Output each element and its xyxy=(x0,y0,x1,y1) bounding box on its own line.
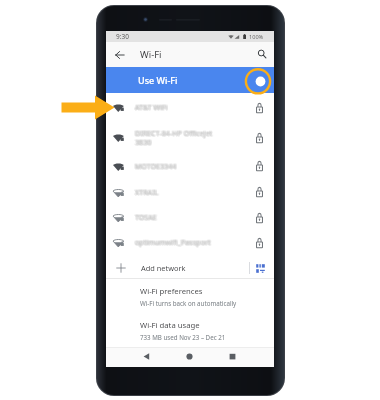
staticText: 3830 xyxy=(135,139,152,148)
staticText: 3830 xyxy=(134,137,151,146)
button[interactable]: Use Wi-Fi toggle xyxy=(244,67,272,93)
staticText: AT&T WiFi xyxy=(134,102,167,111)
staticText: AT&T WiFi xyxy=(136,102,169,111)
staticText: TOSAE xyxy=(136,213,158,222)
staticText: Wi-Fi data usage xyxy=(140,320,200,330)
staticText: Wi-Fi preferences xyxy=(140,286,203,296)
staticText: AT&T WiFi xyxy=(134,103,167,112)
staticText: MOTOE3344 xyxy=(136,163,178,172)
staticText: XTRAIL xyxy=(134,188,158,197)
staticText: 3830 xyxy=(136,137,153,146)
staticText: optimumwifi_Passport xyxy=(136,238,212,247)
staticText: MOTOE3344 xyxy=(134,162,176,171)
staticText: optimumwifi_Passport xyxy=(135,239,211,248)
button[interactable]: Home xyxy=(180,347,198,365)
staticText: TOSAE xyxy=(135,212,157,221)
staticText: AT&T WiFi xyxy=(136,104,169,113)
staticText: TOSAE xyxy=(136,214,158,223)
staticText: DIRECT-84-HP OfficeJet xyxy=(135,129,213,138)
staticText: XTRAIL xyxy=(136,187,160,196)
button[interactable]: TOSAE xyxy=(106,205,274,230)
button[interactable]: Wi-Fi data usage xyxy=(106,313,274,347)
button[interactable]: MOTOE3344 xyxy=(106,153,274,179)
staticText: 3830 xyxy=(136,138,153,147)
staticText: AT&T WiFi xyxy=(136,103,169,112)
staticText: 3830 xyxy=(135,138,152,147)
button[interactable]: Recent apps xyxy=(223,347,241,365)
staticText: DIRECT-84-HP OfficeJet xyxy=(135,130,213,139)
button[interactable]: Search xyxy=(250,42,275,67)
staticText: TOSAE xyxy=(134,212,156,221)
staticText: XTRAIL xyxy=(135,189,159,198)
staticText: Use Wi-Fi xyxy=(138,74,178,86)
staticText: TOSAE xyxy=(135,214,157,223)
staticText: TOSAE xyxy=(134,213,156,222)
staticText: DIRECT-84-HP OfficeJet xyxy=(135,129,213,138)
staticText: optimumwifi_Passport xyxy=(135,239,211,248)
staticText: optimumwifi_Passport xyxy=(135,238,211,247)
staticText: AT&T WiFi xyxy=(134,103,167,112)
staticText: 3830 xyxy=(134,138,151,147)
staticText: TOSAE xyxy=(135,213,157,222)
button[interactable]: Scan QR code xyxy=(256,264,265,273)
staticText: XTRAIL xyxy=(135,189,159,198)
staticText: 3830 xyxy=(135,137,152,146)
staticText: TOSAE xyxy=(136,213,158,222)
staticText: Add network xyxy=(141,263,186,273)
staticText: 3830 xyxy=(135,139,152,148)
staticText: XTRAIL xyxy=(135,188,159,197)
staticText: AT&T WiFi xyxy=(135,103,168,112)
staticText: DIRECT-84-HP OfficeJet xyxy=(134,129,212,138)
staticText: 733 MB used Nov 23 – Dec 21 xyxy=(140,333,226,341)
staticText: AT&T WiFi xyxy=(135,102,168,111)
staticText: XTRAIL xyxy=(136,189,160,198)
staticText: TOSAE xyxy=(135,213,157,222)
staticText: MOTOE3344 xyxy=(135,161,177,170)
button[interactable]: optimumwifi_Passport xyxy=(106,230,274,255)
staticText: 9:30 xyxy=(116,32,129,41)
button[interactable]: Back xyxy=(107,42,132,67)
staticText: Wi-Fi xyxy=(140,48,162,61)
staticText: optimumwifi_Passport xyxy=(136,239,212,248)
staticText: optimumwifi_Passport xyxy=(134,238,210,247)
button[interactable]: Add network xyxy=(106,255,274,278)
staticText: AT&T WiFi xyxy=(135,103,168,112)
staticText: MOTOE3344 xyxy=(135,163,177,172)
staticText: optimumwifi_Passport xyxy=(136,237,212,246)
staticText: DIRECT-84-HP OfficeJet xyxy=(135,128,213,137)
staticText: 3830 xyxy=(135,138,152,147)
staticText: MOTOE3344 xyxy=(136,162,178,171)
button[interactable]: Back xyxy=(137,347,155,365)
staticText: XTRAIL xyxy=(135,188,159,197)
staticText: XTRAIL xyxy=(134,187,158,196)
button[interactable]: Use Wi-Fi xyxy=(106,67,274,93)
button[interactable]: XTRAIL xyxy=(106,179,274,205)
staticText: 3830 xyxy=(136,138,153,147)
staticText: XTRAIL xyxy=(134,188,158,197)
staticText: MOTOE3344 xyxy=(134,161,176,170)
staticText: AT&T WiFi xyxy=(136,103,169,112)
staticText: TOSAE xyxy=(135,214,157,223)
staticText: TOSAE xyxy=(136,212,158,221)
staticText: optimumwifi_Passport xyxy=(135,237,211,246)
staticText: optimumwifi_Passport xyxy=(135,238,211,247)
staticText: MOTOE3344 xyxy=(134,162,176,171)
staticText: DIRECT-84-HP OfficeJet xyxy=(136,130,214,139)
staticText: MOTOE3344 xyxy=(136,161,178,170)
staticText: optimumwifi_Passport xyxy=(134,237,210,246)
staticText: AT&T WiFi xyxy=(135,104,168,113)
staticText: MOTOE3344 xyxy=(135,162,177,171)
staticText: MOTOE3344 xyxy=(136,162,178,171)
staticText: AT&T WiFi xyxy=(135,104,168,113)
staticText: XTRAIL xyxy=(136,188,160,197)
staticText: XTRAIL xyxy=(136,188,160,197)
staticText: DIRECT-84-HP OfficeJet xyxy=(136,129,214,138)
button[interactable]: AT&T WiFi xyxy=(106,93,274,122)
staticText: XTRAIL xyxy=(135,187,159,196)
button[interactable]: DIRECT-84-HP OfficeJet xyxy=(106,122,274,153)
staticText: 100% xyxy=(249,33,264,41)
button[interactable]: Wi-Fi preferences xyxy=(106,279,274,313)
staticText: optimumwifi_Passport xyxy=(136,238,212,247)
staticText: MOTOE3344 xyxy=(135,163,177,172)
staticText: DIRECT-84-HP OfficeJet xyxy=(134,128,212,137)
